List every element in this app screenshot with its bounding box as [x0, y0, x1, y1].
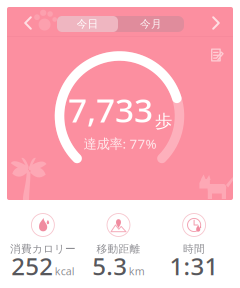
button[interactable]: 消費カロリー	[5, 208, 81, 288]
button[interactable]: 今月	[118, 16, 184, 32]
staticText: 移動距離	[96, 242, 140, 255]
staticText: 252	[11, 250, 53, 282]
staticText: 7,733	[68, 87, 153, 132]
button[interactable]: 時間	[156, 208, 232, 288]
staticText: km	[129, 264, 145, 278]
staticText: 歩	[155, 110, 172, 132]
staticText: 時間	[183, 242, 205, 255]
staticText: kcal	[55, 264, 75, 278]
button[interactable]: 今日	[57, 16, 118, 32]
button[interactable]: Notes	[205, 43, 229, 67]
button[interactable]: 移動距離	[81, 208, 156, 288]
staticText: 1:31	[170, 250, 219, 282]
staticText: 今日	[76, 17, 98, 30]
staticText: 今月	[140, 17, 162, 30]
staticText: 達成率: 77%	[83, 135, 156, 152]
button[interactable]: Next	[202, 8, 230, 38]
staticText: 消費カロリー	[10, 242, 76, 255]
button[interactable]: Previous	[14, 8, 42, 38]
staticText: 5.3	[92, 250, 127, 282]
